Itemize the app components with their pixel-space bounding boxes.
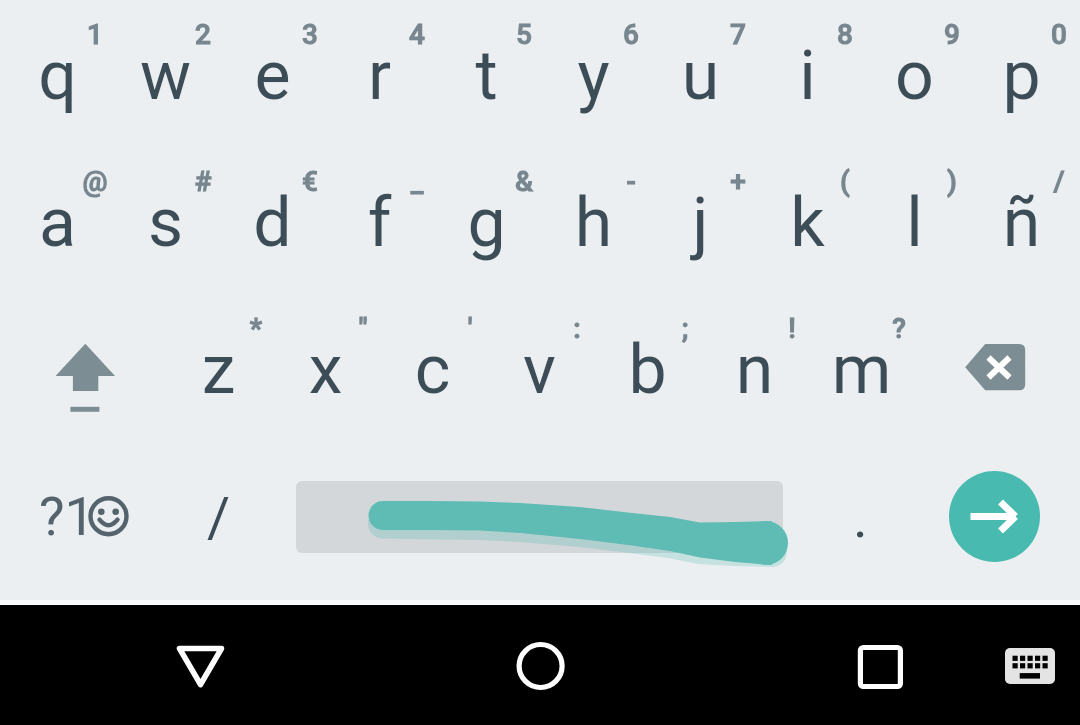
button[interactable]: Backspace	[940, 330, 1050, 430]
staticText: c	[379, 330, 486, 410]
staticText: _	[381, 165, 453, 198]
button[interactable]: Shift	[30, 330, 140, 430]
staticText: 3	[274, 18, 346, 51]
button[interactable]: .	[820, 470, 900, 565]
button[interactable]: Switch keyboard	[995, 641, 1065, 691]
button[interactable]: c	[379, 284, 486, 431]
button[interactable]: p	[968, 0, 1075, 137]
button[interactable]: i	[754, 0, 861, 137]
staticText: .	[853, 485, 868, 551]
staticText: /	[207, 485, 231, 551]
staticText: 0	[1023, 18, 1080, 51]
staticText: "	[327, 312, 399, 345]
staticText: ;	[649, 312, 721, 345]
staticText: q	[4, 36, 111, 116]
button[interactable]: n	[701, 284, 808, 431]
staticText: 1	[59, 18, 131, 51]
button[interactable]: y	[540, 0, 647, 137]
staticText: !	[756, 312, 828, 345]
button[interactable]: Symbols and emoji	[25, 475, 140, 560]
staticText: m	[808, 330, 915, 410]
staticText: #	[167, 165, 239, 198]
staticText: 6	[595, 18, 667, 51]
staticText: (	[809, 165, 881, 198]
staticText: €	[274, 165, 346, 198]
staticText: o	[861, 36, 968, 116]
button[interactable]: Recents	[835, 621, 925, 711]
staticText: f	[326, 183, 433, 263]
button[interactable]: z	[165, 284, 272, 431]
staticText: @	[59, 165, 131, 198]
staticText: k	[754, 183, 861, 263]
staticText: w	[112, 36, 219, 116]
button[interactable]: h	[540, 137, 647, 284]
staticText: x	[272, 330, 379, 410]
staticText: /	[1023, 165, 1080, 198]
staticText: z	[165, 330, 272, 410]
button[interactable]: g	[433, 137, 540, 284]
staticText: a	[4, 183, 111, 263]
staticText: :	[541, 312, 613, 345]
button[interactable]: Home	[495, 621, 585, 711]
button[interactable]: d	[219, 137, 326, 284]
staticText: '	[434, 312, 506, 345]
button[interactable]: w	[112, 0, 219, 137]
staticText: )	[916, 165, 988, 198]
button[interactable]: Enter	[949, 471, 1040, 562]
staticText: t	[433, 36, 540, 116]
staticText: 9	[916, 18, 988, 51]
staticText: &	[488, 165, 560, 198]
button[interactable]: b	[594, 284, 701, 431]
staticText: d	[219, 183, 326, 263]
staticText: s	[112, 183, 219, 263]
staticText: 5	[488, 18, 560, 51]
staticText: b	[594, 330, 701, 410]
staticText: e	[219, 36, 326, 116]
staticText: l	[861, 183, 968, 263]
staticText: i	[754, 36, 861, 116]
staticText: 4	[381, 18, 453, 51]
button[interactable]: v	[486, 284, 593, 431]
staticText: p	[968, 36, 1075, 116]
staticText: 7	[702, 18, 774, 51]
staticText: 2	[167, 18, 239, 51]
button[interactable]: m	[808, 284, 915, 431]
staticText: h	[540, 183, 647, 263]
button[interactable]: l	[861, 137, 968, 284]
staticText: ?1	[39, 485, 95, 548]
staticText: u	[647, 36, 754, 116]
button[interactable]: j	[647, 137, 754, 284]
staticText: +	[702, 165, 774, 198]
staticText: *	[220, 312, 292, 345]
button[interactable]: k	[754, 137, 861, 284]
button[interactable]: /	[174, 470, 264, 565]
staticText: 8	[809, 18, 881, 51]
button[interactable]: x	[272, 284, 379, 431]
staticText: j	[647, 183, 754, 263]
staticText: g	[433, 183, 540, 263]
button[interactable]: u	[647, 0, 754, 137]
button[interactable]: Back	[155, 621, 245, 711]
button[interactable]: f	[326, 137, 433, 284]
button[interactable]: ñ	[968, 137, 1075, 284]
button[interactable]: s	[112, 137, 219, 284]
staticText: r	[326, 36, 433, 116]
staticText: y	[540, 36, 647, 116]
button[interactable]: Space	[296, 481, 783, 553]
staticText: -	[595, 165, 667, 198]
button[interactable]: o	[861, 0, 968, 137]
button[interactable]: e	[219, 0, 326, 137]
staticText: v	[486, 330, 593, 410]
button[interactable]: t	[433, 0, 540, 137]
button[interactable]: r	[326, 0, 433, 137]
button[interactable]: a	[4, 137, 111, 284]
staticText: ?	[863, 312, 935, 345]
staticText: n	[701, 330, 808, 410]
button[interactable]: q	[4, 0, 111, 137]
staticText: ñ	[968, 183, 1075, 263]
